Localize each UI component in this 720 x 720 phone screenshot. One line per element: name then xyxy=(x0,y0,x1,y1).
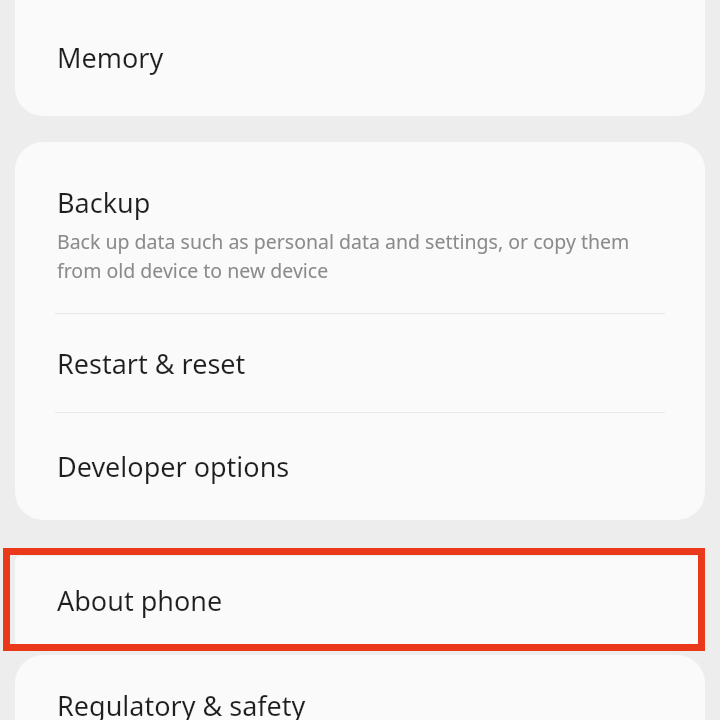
button[interactable]: Restart & reset xyxy=(15,314,705,412)
button[interactable]: Backup xyxy=(15,142,705,313)
button[interactable]: Memory xyxy=(15,0,705,116)
staticText: Developer options xyxy=(57,448,290,485)
button[interactable]: About phone xyxy=(15,556,705,645)
button[interactable]: Developer options xyxy=(15,413,705,520)
staticText: Back up data such as personal data and s… xyxy=(57,228,669,283)
staticText: Restart & reset xyxy=(57,345,246,382)
staticText: Backup xyxy=(57,184,151,221)
staticText: Memory xyxy=(57,39,164,76)
staticText: About phone xyxy=(57,582,223,619)
button[interactable]: Regulatory & safety xyxy=(15,655,705,720)
staticText: Regulatory & safety xyxy=(57,687,306,720)
